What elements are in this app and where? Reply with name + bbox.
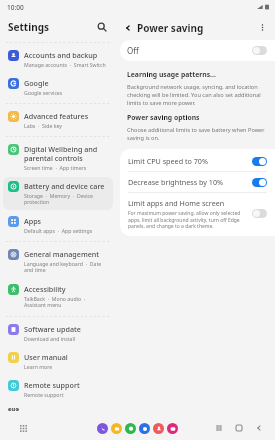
staticText: Decrease brightness by 10% <box>128 177 223 187</box>
staticText: Power saving options <box>127 113 200 122</box>
staticText: General management <box>24 249 100 259</box>
button[interactable] <box>252 46 267 55</box>
staticText: Learn more <box>24 363 53 370</box>
staticText: Apps <box>24 216 42 226</box>
button[interactable]: User manual <box>3 348 113 374</box>
staticText: Default apps · App settings <box>24 227 93 234</box>
button[interactable]: gallery <box>153 423 164 434</box>
staticText: 10:00 <box>7 3 24 12</box>
button[interactable]: Battery and device care <box>3 177 113 210</box>
button[interactable]: Google <box>3 74 113 100</box>
staticText: Labs · Side key <box>24 122 62 129</box>
button[interactable]: Accessibility <box>3 280 113 313</box>
staticText: Remote support <box>24 380 80 390</box>
staticText: Battery and device care <box>24 181 105 191</box>
button[interactable]: Apps <box>3 212 113 238</box>
button[interactable]: Digital Wellbeing and parental controls <box>3 140 113 175</box>
staticText: Settings <box>8 20 49 34</box>
button[interactable]: Accounts and backup <box>3 46 113 72</box>
button[interactable]: Limit apps and Home screen <box>120 193 275 234</box>
button[interactable]: camera <box>167 423 178 434</box>
button[interactable]: About tablet <box>3 404 113 415</box>
button[interactable]: Recents <box>213 422 225 434</box>
button[interactable]: Decrease brightness by 10% <box>120 172 275 192</box>
staticText: Limit apps and Home screen <box>128 198 225 208</box>
staticText: Google services <box>24 89 63 96</box>
staticText: Learning usage patterns... <box>127 70 216 79</box>
staticText: Screen time · App timers <box>24 164 87 171</box>
button[interactable]: All apps <box>16 421 30 435</box>
button[interactable]: Remote support <box>3 376 113 402</box>
staticText: Download and install <box>24 335 76 342</box>
staticText: Choose additional limits to save battery… <box>127 126 268 142</box>
staticText: Limit CPU speed to 70% <box>128 156 208 166</box>
staticText: User manual <box>24 352 68 362</box>
button[interactable]: Back <box>120 20 135 35</box>
button[interactable]: internet <box>139 423 150 434</box>
button[interactable] <box>252 178 267 187</box>
staticText: Language and keyboard · Date and time <box>24 260 109 274</box>
staticText: Storage · Memory · Device protection <box>24 192 109 206</box>
button[interactable]: General management <box>3 245 113 278</box>
button[interactable]: Search <box>94 19 110 35</box>
staticText: Power saving <box>137 21 204 35</box>
button[interactable]: Software update <box>3 320 113 346</box>
staticText: Off <box>127 45 139 56</box>
button[interactable]: phone <box>97 423 108 434</box>
button[interactable]: Home <box>233 422 245 434</box>
staticText: Advanced features <box>24 111 89 121</box>
staticText: Digital Wellbeing and parental controls <box>24 144 109 163</box>
button[interactable]: messages <box>125 423 136 434</box>
button[interactable]: Off <box>120 40 275 61</box>
staticText: Background network usage, syncing, and l… <box>127 83 268 107</box>
staticText: Accessibility <box>24 284 66 294</box>
button[interactable]: contacts <box>111 423 122 434</box>
staticText: Accounts and backup <box>24 50 98 60</box>
staticText: Manage accounts · Smart Switch <box>24 61 106 68</box>
button[interactable] <box>252 157 267 166</box>
button[interactable]: Back <box>253 422 265 434</box>
button[interactable]: More options <box>255 20 270 35</box>
staticText: Software update <box>24 324 81 334</box>
staticText: Google <box>24 78 49 88</box>
button[interactable]: Limit CPU speed to 70% <box>120 151 275 171</box>
button[interactable]: Advanced features <box>3 107 113 133</box>
staticText: For maximum power saving, allow only sel… <box>128 210 248 229</box>
staticText: Remote support <box>24 391 64 398</box>
button[interactable] <box>252 209 267 218</box>
staticText: TalkBack · Mono audio · Assistant menu <box>24 295 109 309</box>
